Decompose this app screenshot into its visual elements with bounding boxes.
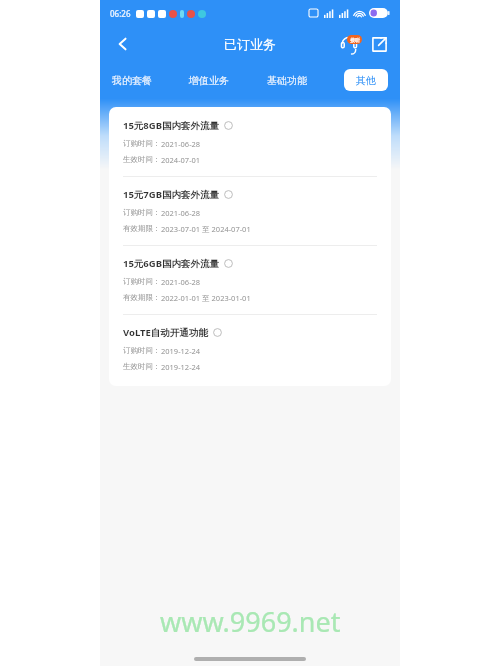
staticText: 其他 <box>356 74 376 87</box>
staticText: 生效时间： <box>123 155 161 164</box>
staticText: 2019-12-24 <box>161 362 201 372</box>
staticText: 生效时间： <box>123 362 161 371</box>
staticText: 有效期限： <box>123 224 161 233</box>
button[interactable]: 我的套餐 <box>112 69 152 91</box>
staticText: VoLTE自动开通功能 <box>123 326 208 339</box>
staticText: 订购时间： <box>123 346 161 355</box>
staticText: 15元7GB国内套外流量 <box>123 188 219 201</box>
button[interactable]: 15元7GB国内套外流量 <box>123 177 377 245</box>
staticText: 订购时间： <box>123 139 161 148</box>
staticText: 2021-06-28 <box>161 208 201 218</box>
staticText: 2024-07-01 <box>161 155 201 165</box>
staticText: 已订业务 <box>224 36 276 52</box>
staticText: 我的套餐 <box>112 74 152 87</box>
staticText: 增值业务 <box>189 74 229 87</box>
staticText: 有效期限： <box>123 293 161 302</box>
button[interactable]: 15元8GB国内套外流量 <box>123 107 377 176</box>
staticText: 订购时间： <box>123 208 161 217</box>
staticText: 基础功能 <box>267 74 307 87</box>
button[interactable]: Back <box>108 29 138 59</box>
button[interactable]: Customer service <box>336 31 362 57</box>
staticText: 06:26 <box>110 8 131 19</box>
staticText: 2021-06-28 <box>161 277 201 287</box>
button[interactable]: 其他 <box>344 69 388 91</box>
staticText: 15元6GB国内套外流量 <box>123 257 219 270</box>
button[interactable]: VoLTE自动开通功能 <box>123 315 377 383</box>
button[interactable]: Share <box>366 31 392 57</box>
button[interactable]: 增值业务 <box>189 69 229 91</box>
button[interactable]: 15元6GB国内套外流量 <box>123 246 377 314</box>
staticText: 2021-06-28 <box>161 139 201 149</box>
staticText: 接听 <box>350 37 360 43</box>
staticText: www.9969.net <box>160 603 341 640</box>
button[interactable]: 基础功能 <box>267 69 307 91</box>
staticText: 15元8GB国内套外流量 <box>123 119 219 132</box>
staticText: 2022-01-01 至 2023-01-01 <box>161 293 251 303</box>
staticText: 2023-07-01 至 2024-07-01 <box>161 224 251 234</box>
staticText: 2019-12-24 <box>161 346 201 356</box>
staticText: 订购时间： <box>123 277 161 286</box>
